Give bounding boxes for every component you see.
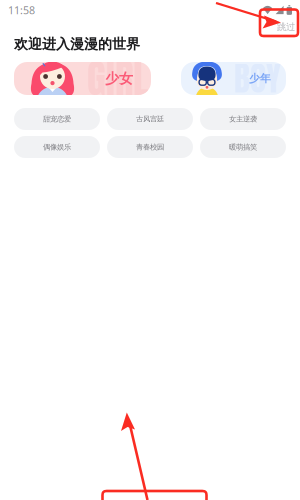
staticText: 少年 [249, 72, 271, 85]
staticText: GIRL [87, 49, 148, 108]
button[interactable]: 青春校园 [107, 136, 193, 158]
button[interactable]: 跳过 [274, 19, 298, 35]
staticText: 欢迎进入漫漫的世界 [14, 35, 140, 53]
staticText: 青春校园 [136, 142, 164, 152]
button[interactable]: 暖萌搞笑 [200, 136, 286, 158]
staticText: 甜宠恋爱 [43, 114, 71, 124]
staticText: 女主逆袭 [229, 114, 257, 124]
staticText: 11:58 [8, 3, 35, 17]
button[interactable]: 女主逆袭 [200, 108, 286, 130]
button[interactable]: GIRL [14, 62, 151, 95]
staticText: 古风宫廷 [136, 114, 164, 124]
staticText: 跳过 [277, 21, 295, 33]
staticText: 少女 [105, 70, 133, 87]
button[interactable]: BOY [181, 62, 286, 95]
staticText: 暖萌搞笑 [229, 142, 257, 152]
button[interactable]: 偶像娱乐 [14, 136, 100, 158]
button[interactable]: 甜宠恋爱 [14, 108, 100, 130]
staticText: 偶像娱乐 [43, 142, 71, 152]
button[interactable]: 古风宫廷 [107, 108, 193, 130]
staticText: BOY [234, 53, 281, 104]
